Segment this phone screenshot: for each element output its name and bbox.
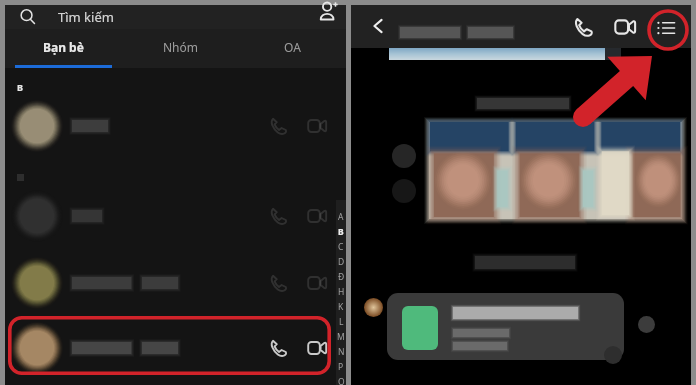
- button[interactable]: Video call: [614, 16, 636, 38]
- button[interactable]: Video call: [307, 273, 327, 293]
- staticText: C: [338, 241, 344, 253]
- button[interactable]: Call: [5, 257, 346, 309]
- button[interactable]: React to message: [638, 316, 655, 333]
- button[interactable]: Bạn bè: [5, 29, 122, 65]
- staticText: Q: [338, 376, 345, 385]
- button[interactable]: Video call: [307, 338, 327, 358]
- button[interactable]: Back: [369, 17, 387, 35]
- button[interactable]: Add friend: [317, 1, 339, 23]
- staticText: N: [338, 346, 345, 358]
- button[interactable]: Call: [5, 100, 346, 152]
- button[interactable]: Call: [269, 273, 289, 293]
- staticText: Tìm kiếm: [58, 8, 114, 26]
- staticText: K: [338, 301, 344, 313]
- button[interactable]: OA: [239, 29, 346, 65]
- staticText: L: [339, 316, 344, 328]
- button[interactable]: Call: [269, 116, 289, 136]
- staticText: Nhóm: [163, 39, 199, 55]
- button[interactable]: [387, 293, 624, 360]
- staticText: A: [338, 211, 344, 223]
- button[interactable]: React: [392, 144, 416, 168]
- staticText: B: [17, 81, 23, 93]
- staticText: OA: [284, 39, 301, 55]
- button[interactable]: Video call: [307, 116, 327, 136]
- button[interactable]: Search: [5, 5, 346, 29]
- button[interactable]: Call: [269, 338, 289, 358]
- staticText: D: [338, 256, 345, 268]
- button[interactable]: More options: [392, 179, 416, 203]
- button[interactable]: Call: [269, 206, 289, 226]
- staticText: Đ: [338, 271, 345, 283]
- button[interactable]: Call: [573, 16, 595, 38]
- staticText: H: [338, 286, 345, 298]
- button[interactable]: Call: [5, 322, 346, 374]
- button[interactable]: Menu: [656, 18, 676, 38]
- button[interactable]: Nhóm: [122, 29, 239, 65]
- staticText: Bạn bè: [43, 39, 84, 55]
- button[interactable]: Video call: [307, 206, 327, 226]
- staticText: P: [338, 361, 344, 373]
- staticText: B: [338, 226, 344, 238]
- staticText: M: [337, 331, 345, 343]
- button[interactable]: Call: [5, 190, 346, 242]
- other: Search: [19, 8, 37, 26]
